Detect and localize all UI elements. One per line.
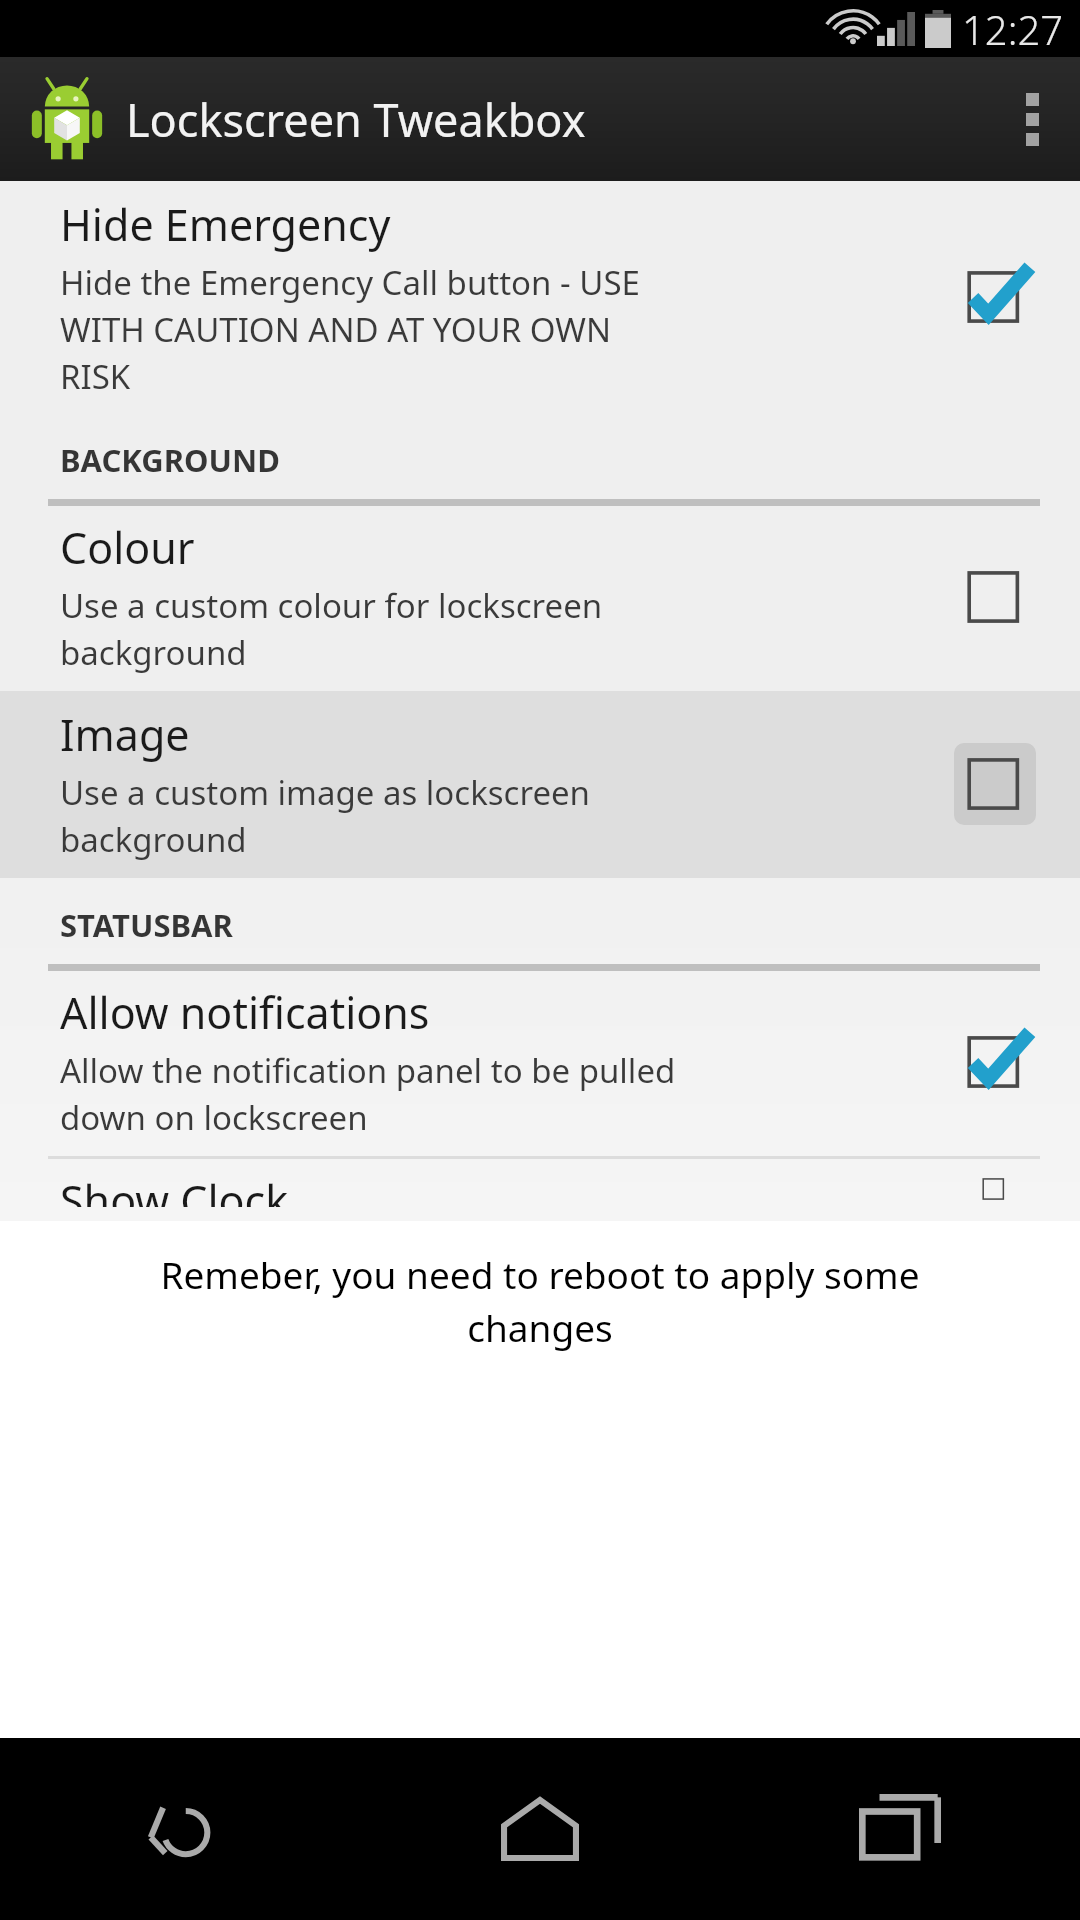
staticText: Lockscreen Tweakbox xyxy=(126,89,586,150)
staticText: WITH CAUTION AND AT YOUR OWN xyxy=(60,307,612,352)
staticText: down on lockscreen xyxy=(60,1095,368,1140)
staticText: STATUSBAR xyxy=(60,904,233,946)
staticText: Hide the Emergency Call button - USE xyxy=(60,260,640,305)
button[interactable]: Checked xyxy=(952,1019,1038,1105)
button[interactable]: Unchecked xyxy=(952,554,1038,640)
button[interactable]: Colour xyxy=(0,506,1080,691)
staticText: Image xyxy=(60,705,190,764)
staticText: Hide Emergency xyxy=(60,195,391,254)
staticText: Remeber, you need to reboot to apply som… xyxy=(12,1249,1068,1352)
button[interactable]: Checked xyxy=(952,254,1038,340)
staticText: RISK xyxy=(60,354,131,399)
staticText: Allow the notification panel to be pulle… xyxy=(60,1048,676,1093)
staticText: Use a custom image as lockscreen xyxy=(60,770,591,815)
button[interactable]: Hide Emergency xyxy=(0,181,1080,413)
staticText: Allow notifications xyxy=(60,983,430,1042)
staticText: background xyxy=(60,817,247,862)
button[interactable]: Image xyxy=(0,691,1080,878)
staticText: background xyxy=(60,630,247,675)
button[interactable]: Allow notifications xyxy=(0,971,1080,1156)
button[interactable]: Back xyxy=(0,1738,360,1920)
staticText: Use a custom colour for lockscreen xyxy=(60,583,603,628)
staticText: Show Clock xyxy=(60,1171,289,1207)
button[interactable]: Show Clock xyxy=(0,1159,1080,1221)
button[interactable]: More options xyxy=(984,57,1080,181)
button[interactable]: Unchecked xyxy=(952,1171,1038,1207)
staticText: BACKGROUND xyxy=(60,439,280,481)
staticText: Colour xyxy=(60,518,195,577)
staticText: 12:27 xyxy=(962,2,1064,56)
button[interactable]: Unchecked xyxy=(952,741,1038,827)
button[interactable]: Recent apps xyxy=(720,1738,1080,1920)
button[interactable]: Home xyxy=(360,1738,720,1920)
